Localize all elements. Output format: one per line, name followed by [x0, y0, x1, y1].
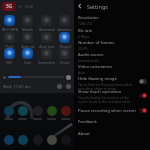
staticText: Auto sync: [39, 44, 55, 48]
button[interactable]: App: [31, 106, 44, 120]
button[interactable]: Back: [77, 3, 83, 9]
staticText: Audio source: [78, 52, 104, 58]
staticText: Resolution: [78, 15, 99, 21]
button[interactable]: Cast: [19, 48, 36, 64]
button[interactable]: Wi-Fi WPA: [1, 15, 18, 31]
button[interactable]: Show touch operation: [139, 93, 147, 98]
staticText: Auto: [78, 71, 86, 75]
staticText: Show touch operation: [78, 89, 122, 95]
button[interactable]: App: [2, 135, 15, 145]
button[interactable]: Airplane mode: [56, 15, 73, 31]
staticText: Internal audio: [78, 59, 100, 63]
staticText: Hide floating image: [78, 76, 117, 82]
staticText: Airplane mode: [56, 27, 73, 31]
button[interactable]: Bit rate: [74, 27, 150, 40]
button[interactable]: Hide floating image: [74, 75, 150, 92]
button[interactable]: App: [2, 106, 15, 120]
staticText: Cast: [24, 60, 31, 64]
button[interactable]: App: [31, 135, 44, 145]
staticText: Wi-Fi WPA: [2, 27, 18, 31]
button[interactable]: App: [45, 106, 58, 120]
staticText: Fri, 18:46: [18, 4, 34, 9]
button[interactable]: Bluetooth: [38, 15, 55, 31]
button[interactable]: Auto rot: [19, 32, 36, 48]
button[interactable]: Record: [56, 32, 73, 48]
staticText: 30 FPS: [78, 47, 88, 51]
button[interactable]: App: [16, 135, 29, 145]
staticText: Visually display the position of the scr…: [78, 96, 137, 104]
staticText: 4 Mbps: [78, 35, 89, 39]
button[interactable]: Video orientation: [74, 63, 150, 76]
button[interactable]: Feedback: [74, 118, 150, 126]
staticText: Settings: [87, 3, 108, 10]
staticText: 1280x720: [78, 22, 93, 26]
button[interactable]: Pause recording when screen is off: [139, 108, 147, 113]
button[interactable]: Hide floating image: [139, 79, 147, 84]
button[interactable]: App: [59, 106, 72, 120]
staticText: NFC: [6, 60, 13, 64]
staticText: Record: [59, 44, 71, 48]
button[interactable]: NFC: [1, 48, 18, 64]
button[interactable]: About: [74, 130, 150, 138]
button[interactable]: Show touch operation: [74, 88, 150, 105]
staticText: Flash: [5, 44, 14, 48]
staticText: 5G: [6, 3, 13, 10]
button[interactable]: Resolution: [74, 14, 150, 27]
staticText: Number of frames: [78, 40, 115, 46]
staticText: About: [78, 131, 90, 137]
staticText: Wed, 17:45 am: [3, 84, 31, 89]
staticText: Video orientation: [78, 64, 113, 70]
button[interactable]: Mobile data: [19, 15, 36, 31]
button[interactable]: Audio source: [74, 51, 150, 64]
button[interactable]: Smart Monitor: [56, 48, 73, 64]
button[interactable]: Pause recording when screen is off: [74, 107, 150, 115]
staticText: Bluetooth: [39, 27, 55, 31]
staticText: Feedback: [78, 119, 97, 125]
staticText: Bit rate: [78, 28, 93, 34]
button[interactable]: Number of frames: [74, 39, 150, 52]
button[interactable]: Flash: [1, 32, 18, 48]
staticText: Pause recording when screen is off: [78, 108, 137, 114]
staticText: Tap to hide the floating button while re…: [78, 83, 137, 91]
button[interactable]: App: [16, 106, 29, 120]
staticText: Mobile data: [19, 27, 36, 31]
staticText: Auto rot: [21, 44, 35, 48]
button[interactable]: Settings: [66, 84, 71, 89]
staticText: Screenshot: [38, 60, 55, 64]
button[interactable]: Screenshot: [38, 48, 55, 64]
button[interactable]: App: [45, 135, 58, 145]
staticText: Smart Monitor: [56, 60, 73, 64]
button[interactable]: App: [59, 135, 72, 145]
button[interactable]: Edit tiles: [57, 84, 62, 89]
button[interactable]: Auto sync: [38, 32, 55, 48]
